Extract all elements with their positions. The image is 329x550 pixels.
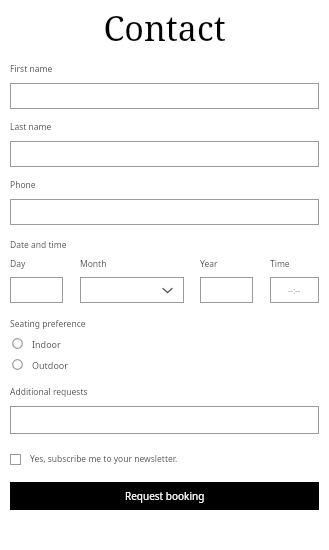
staticText: Year — [200, 258, 218, 270]
button[interactable]: Indoor — [10, 334, 319, 353]
staticText: Request booking — [125, 489, 205, 503]
staticText: Day — [10, 258, 26, 270]
button[interactable]: Select month — [80, 277, 184, 303]
staticText: --:-- — [288, 285, 301, 296]
staticText: Contact — [103, 5, 226, 51]
staticText: First name — [10, 63, 53, 75]
staticText: Outdoor — [32, 359, 68, 371]
button[interactable]: Year — [200, 277, 253, 303]
staticText: Date and time — [10, 239, 67, 251]
staticText: Indoor — [32, 338, 61, 350]
staticText: Phone — [10, 179, 36, 191]
staticText: Seating preference — [10, 318, 86, 330]
button[interactable]: Phone — [10, 199, 319, 225]
button[interactable]: Time — [270, 277, 319, 303]
staticText: Time — [270, 258, 290, 270]
button[interactable]: Last name — [10, 141, 319, 167]
button[interactable]: Additional requests — [10, 406, 319, 434]
button[interactable]: Day — [10, 277, 63, 303]
button[interactable]: First name — [10, 83, 319, 109]
button[interactable]: Request booking — [10, 482, 319, 510]
button[interactable]: Yes, subscribe me to your newsletter. — [10, 452, 319, 466]
staticText: Yes, subscribe me to your newsletter. — [30, 453, 178, 465]
staticText: Additional requests — [10, 386, 88, 398]
button[interactable]: Outdoor — [10, 355, 319, 374]
staticText: Month — [80, 258, 107, 270]
staticText: Last name — [10, 121, 52, 133]
